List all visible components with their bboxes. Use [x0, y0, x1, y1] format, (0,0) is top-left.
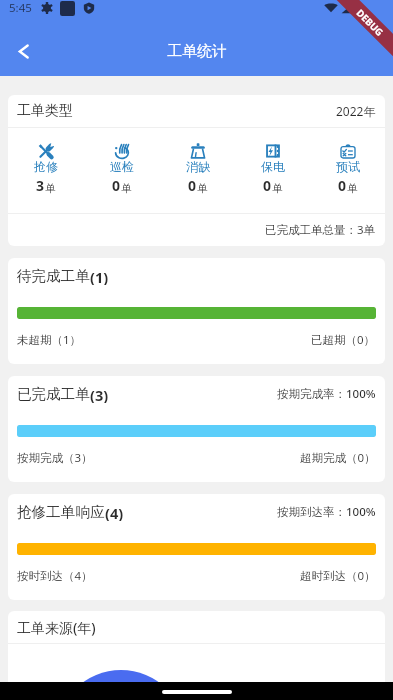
staticText: 已完成工单: [17, 385, 90, 403]
staticText: 单: [347, 182, 358, 195]
button[interactable]: 待完成工单: [8, 258, 385, 364]
staticText: 单: [197, 182, 208, 195]
staticText: 预试: [336, 159, 360, 174]
staticText: (1): [90, 267, 109, 285]
button[interactable]: Back: [4, 32, 43, 71]
staticText: 按期完成率：100%: [277, 386, 376, 402]
button[interactable]: 已完成工单: [8, 376, 385, 482]
staticText: 工单统计: [167, 42, 227, 61]
button[interactable]: 抢修工单响应: [8, 494, 385, 600]
staticText: 单: [45, 182, 56, 195]
staticText: 按期完成（3）: [17, 450, 93, 466]
staticText: 3: [36, 176, 45, 195]
staticText: 已完成工单总量：3单: [265, 222, 376, 238]
staticText: 单: [121, 182, 132, 195]
button[interactable]: 预试: [310, 128, 385, 195]
staticText: 2022年: [336, 103, 376, 119]
staticText: 0: [112, 176, 121, 195]
staticText: 未超期（1）: [17, 332, 82, 348]
button[interactable]: 消缺: [160, 128, 235, 195]
staticText: 0: [188, 176, 197, 195]
staticText: 抢修: [34, 159, 58, 174]
staticText: DEBUG: [354, 6, 386, 39]
staticText: 超期完成（0）: [300, 450, 376, 466]
staticText: (4): [105, 503, 124, 521]
button[interactable]: 抢修: [8, 128, 84, 195]
staticText: 按时到达（4）: [17, 568, 93, 584]
staticText: 5:45: [9, 0, 32, 16]
staticText: 0: [263, 176, 272, 195]
button[interactable]: 巡检: [84, 128, 160, 195]
staticText: 消缺: [186, 159, 210, 174]
staticText: 工单类型: [17, 102, 73, 120]
staticText: 0: [338, 176, 347, 195]
staticText: 保电: [261, 159, 285, 174]
staticText: 按期到达率：100%: [277, 504, 376, 520]
staticText: 超时到达（0）: [300, 568, 376, 584]
staticText: 已超期（0）: [311, 332, 376, 348]
staticText: 抢修工单响应: [17, 503, 105, 521]
staticText: 工单来源(年): [17, 618, 96, 637]
staticText: 巡检: [110, 159, 134, 174]
staticText: (3): [90, 385, 109, 403]
staticText: 待完成工单: [17, 267, 90, 285]
button[interactable]: 保电: [235, 128, 310, 195]
staticText: 单: [272, 182, 283, 195]
